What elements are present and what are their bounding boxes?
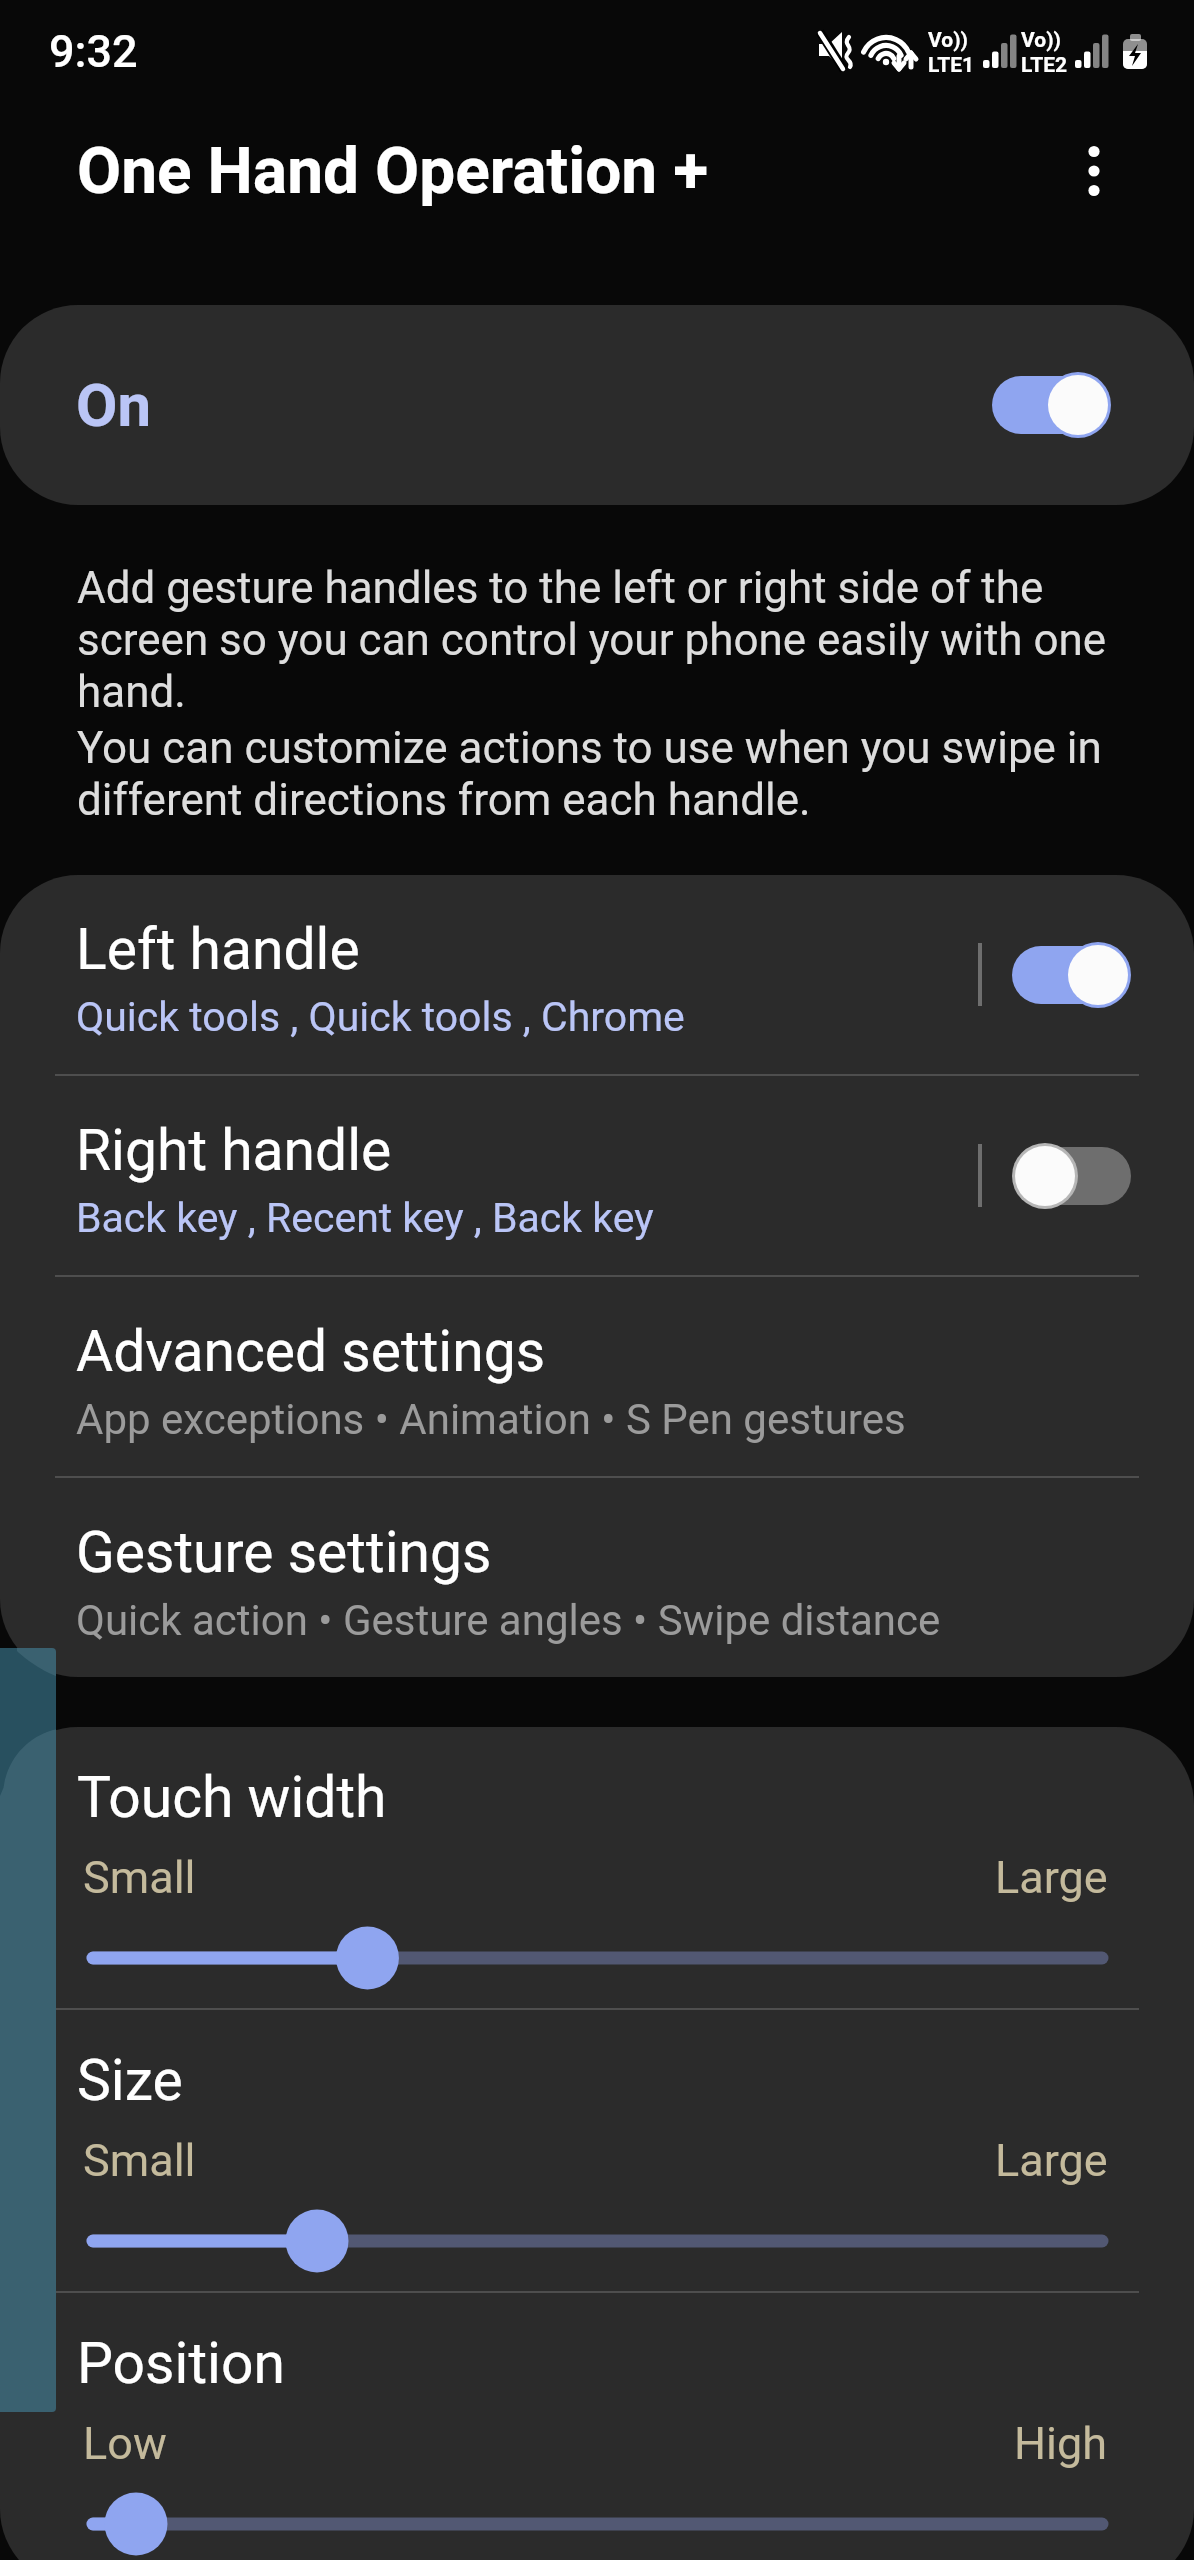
staticText: You can customize actions to use when yo… bbox=[77, 722, 1118, 826]
staticText: Touch width bbox=[77, 1764, 387, 1831]
staticText: LTE1 bbox=[928, 53, 975, 78]
staticText: Small bbox=[83, 2134, 995, 2187]
staticText: Add gesture handles to the left or right… bbox=[77, 562, 1118, 718]
staticText: App exceptions • Animation • S Pen gestu… bbox=[76, 1395, 906, 1444]
button[interactable]: More options bbox=[1046, 123, 1142, 219]
staticText: LTE2 bbox=[1021, 53, 1068, 78]
button[interactable]: Right handle bbox=[0, 1076, 1194, 1275]
staticText: Right handle bbox=[76, 1117, 392, 1184]
staticText: Small bbox=[83, 1851, 995, 1904]
button[interactable]: Position bbox=[0, 2293, 1194, 2560]
button[interactable]: Gesture settings bbox=[0, 1478, 1194, 1677]
staticText: High bbox=[1014, 2417, 1108, 2470]
staticText: Left handle bbox=[76, 916, 360, 983]
staticText: 9:32 bbox=[49, 25, 138, 78]
staticText: Size bbox=[77, 2047, 183, 2114]
button[interactable]: On bbox=[0, 305, 1194, 505]
staticText: Large bbox=[995, 1851, 1108, 1904]
staticText: Quick action • Gesture angles • Swipe di… bbox=[76, 1596, 941, 1645]
staticText: Advanced settings bbox=[76, 1318, 546, 1385]
button[interactable]: Size bbox=[0, 2010, 1194, 2291]
staticText: Large bbox=[995, 2134, 1108, 2187]
staticText: On bbox=[76, 370, 152, 440]
staticText: Back key , Recent key , Back key bbox=[76, 1194, 654, 1242]
staticText: One Hand Operation + bbox=[77, 134, 709, 209]
button[interactable]: Touch width bbox=[0, 1727, 1194, 2008]
button[interactable]: Right handle switch bbox=[1012, 1141, 1131, 1211]
staticText: Low bbox=[83, 2417, 1014, 2470]
button[interactable]: Left handle bbox=[0, 875, 1194, 1074]
button[interactable]: One Hand Operation + switch bbox=[992, 370, 1111, 440]
staticText: Gesture settings bbox=[76, 1519, 492, 1586]
button[interactable]: Advanced settings bbox=[0, 1277, 1194, 1476]
staticText: Vo)) bbox=[928, 28, 968, 53]
staticText: Quick tools , Quick tools , Chrome bbox=[76, 993, 685, 1041]
staticText: Vo)) bbox=[1021, 28, 1061, 53]
button[interactable]: Gesture handle bbox=[0, 1648, 56, 2412]
button[interactable]: Left handle switch bbox=[1012, 940, 1131, 1010]
staticText: Position bbox=[77, 2330, 285, 2397]
